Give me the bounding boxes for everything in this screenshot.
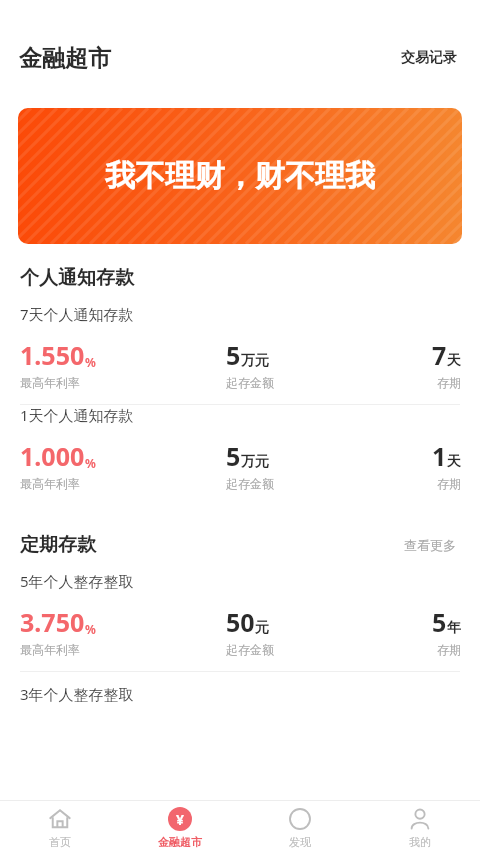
staticText: 定期存款 <box>20 533 96 557</box>
staticText: 交易记录 <box>401 49 457 67</box>
staticText: 1 <box>432 439 447 473</box>
other: 金融超市 <box>168 807 192 831</box>
staticText: ¥ <box>176 810 185 829</box>
staticText: 50 <box>226 605 255 639</box>
staticText: 最高年利率 <box>20 642 80 657</box>
staticText: 起存金额 <box>226 375 274 390</box>
staticText: 起存金额 <box>226 476 274 491</box>
button[interactable]: 我不理财，财不理我 <box>18 108 462 244</box>
button[interactable]: 发现 <box>240 801 360 854</box>
button[interactable]: 我的 <box>360 801 480 854</box>
staticText: 万元 <box>241 352 269 370</box>
staticText: 5年个人整存整取 <box>20 571 134 591</box>
staticText: 存期 <box>437 375 461 390</box>
button[interactable]: 1天个人通知存款 <box>0 405 480 505</box>
button[interactable]: 7天个人通知存款 <box>0 304 480 404</box>
staticText: 1.550 <box>20 338 85 372</box>
staticText: 万元 <box>241 453 269 471</box>
staticText: 1.000 <box>20 439 85 473</box>
button[interactable]: 交易记录 <box>397 45 461 71</box>
staticText: 元 <box>255 619 269 637</box>
staticText: 5 <box>226 338 241 372</box>
staticText: 我的 <box>409 835 431 849</box>
staticText: 1天个人通知存款 <box>20 405 134 425</box>
staticText: 7天个人通知存款 <box>20 304 134 324</box>
staticText: 存期 <box>437 642 461 657</box>
staticText: % <box>85 455 96 471</box>
staticText: 5 <box>432 605 447 639</box>
staticText: 5 <box>226 439 241 473</box>
staticText: % <box>85 354 96 370</box>
staticText: 金融超市 <box>158 835 202 849</box>
staticText: 最高年利率 <box>20 476 80 491</box>
staticText: 个人通知存款 <box>20 266 134 290</box>
staticText: 我不理财，财不理我 <box>105 157 375 195</box>
staticText: 存期 <box>437 476 461 491</box>
button[interactable]: 金融超市 <box>120 801 240 854</box>
staticText: 3年个人整存整取 <box>20 684 134 704</box>
staticText: 天 <box>447 453 461 471</box>
staticText: 金融超市 <box>19 44 111 73</box>
staticText: 天 <box>447 352 461 370</box>
button[interactable]: 首页 <box>0 801 120 854</box>
staticText: 起存金额 <box>226 642 274 657</box>
staticText: 年 <box>447 619 461 637</box>
staticText: 最高年利率 <box>20 375 80 390</box>
staticText: 3.750 <box>20 605 85 639</box>
staticText: 发现 <box>289 835 311 849</box>
button[interactable]: 5年个人整存整取 <box>0 571 480 671</box>
staticText: 查看更多 <box>404 537 456 553</box>
staticText: % <box>85 621 96 637</box>
button[interactable]: 查看更多 <box>400 533 460 557</box>
staticText: 7 <box>432 338 447 372</box>
staticText: 首页 <box>49 835 71 849</box>
